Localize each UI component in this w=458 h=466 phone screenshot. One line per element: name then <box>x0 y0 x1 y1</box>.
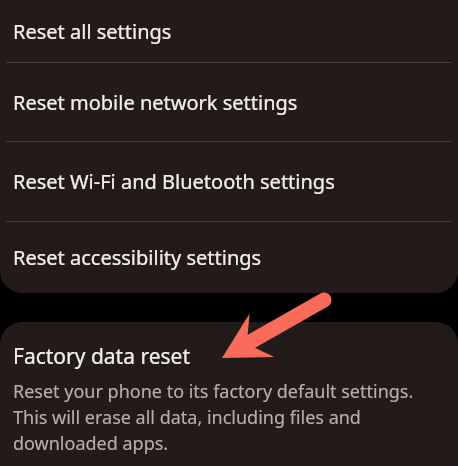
staticText: Reset mobile network settings <box>13 89 298 116</box>
other: Annotation arrow pointing to Factory dat… <box>0 0 458 466</box>
staticText: Reset accessibility settings <box>13 244 262 271</box>
staticText: Factory data reset <box>13 342 190 371</box>
staticText: Reset Wi-Fi and Bluetooth settings <box>13 168 335 195</box>
button[interactable]: Reset Wi-Fi and Bluetooth settings <box>0 142 458 221</box>
staticText: Reset all settings <box>13 18 172 45</box>
button[interactable]: Factory data reset <box>0 322 458 466</box>
button[interactable]: Reset all settings <box>0 0 458 62</box>
staticText: Reset your phone to its factory default … <box>13 379 445 456</box>
button[interactable]: Reset mobile network settings <box>0 63 458 141</box>
button[interactable]: Reset accessibility settings <box>0 222 458 293</box>
